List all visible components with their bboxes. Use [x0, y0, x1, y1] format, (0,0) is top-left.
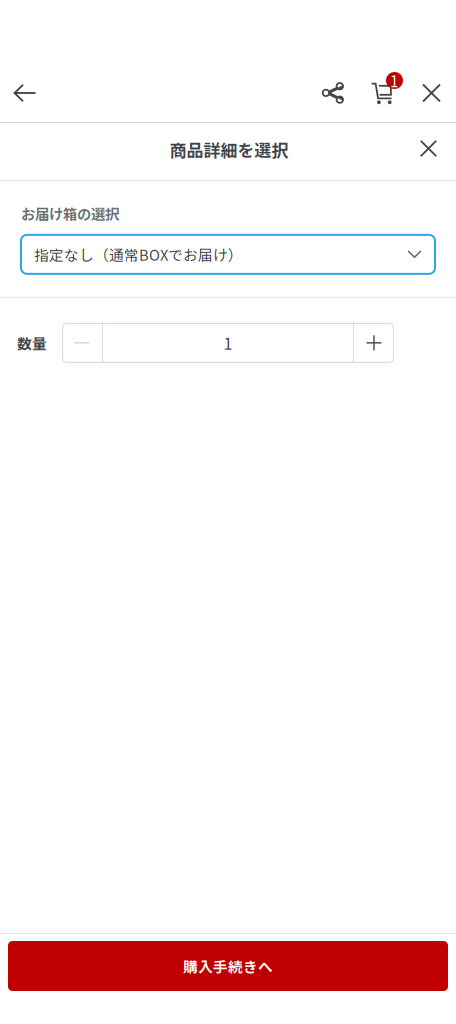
- button[interactable]: 購入手続きへ: [8, 941, 448, 991]
- staticText: 指定なし（通常BOXでお届け）: [34, 244, 243, 265]
- staticText: 購入手続きへ: [183, 955, 273, 977]
- staticText: 商品詳細を選択: [169, 137, 288, 162]
- staticText: 数量: [17, 332, 47, 353]
- button[interactable]: Share: [319, 68, 361, 122]
- button[interactable]: Increase quantity: [354, 323, 394, 363]
- button[interactable]: Back: [0, 68, 50, 122]
- staticText: 1: [390, 69, 399, 92]
- staticText: 1: [223, 331, 232, 354]
- button[interactable]: Close: [407, 68, 456, 122]
- button[interactable]: 指定なし（通常BOXでお届け）: [20, 234, 436, 275]
- button[interactable]: Cart, 1 item: [361, 68, 407, 122]
- button[interactable]: Dismiss: [408, 126, 456, 176]
- button[interactable]: Decrease quantity: [62, 323, 102, 363]
- staticText: お届け箱の選択: [21, 203, 119, 224]
